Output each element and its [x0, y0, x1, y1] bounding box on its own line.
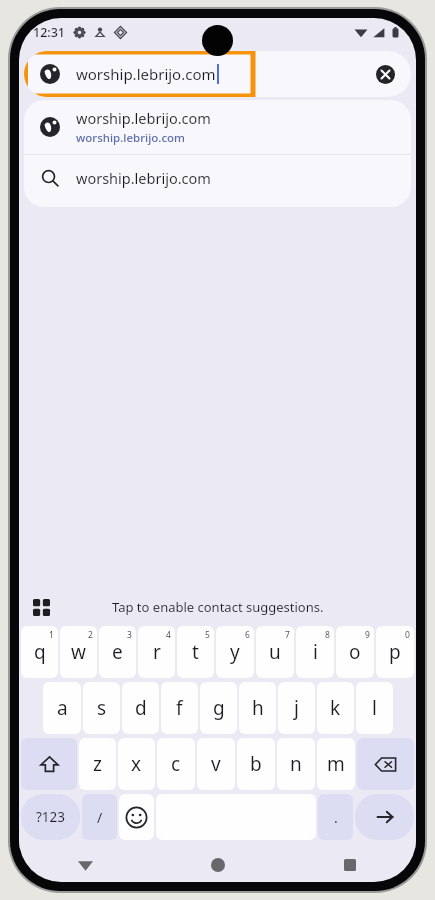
staticText: .	[334, 808, 338, 827]
button[interactable]: x	[118, 738, 155, 790]
button[interactable]: ?123	[21, 794, 80, 840]
staticText: 12:31	[33, 24, 66, 41]
button[interactable]: i	[296, 626, 334, 678]
staticText: w	[71, 639, 86, 665]
staticText: k	[330, 695, 341, 721]
button[interactable]: Clear text	[365, 54, 405, 94]
staticText: Tap to enable contact suggestions.	[112, 598, 324, 616]
staticText: 5	[205, 629, 210, 641]
button[interactable]: Home	[152, 848, 284, 882]
button[interactable]: l	[356, 682, 393, 734]
button[interactable]: w	[60, 626, 97, 678]
staticText: 0	[405, 629, 410, 641]
button[interactable]: /	[82, 794, 117, 840]
staticText: f	[176, 695, 183, 721]
button[interactable]: Recent apps	[284, 848, 416, 882]
staticText: t	[192, 639, 199, 665]
staticText: 6	[245, 629, 250, 641]
staticText: worship.lebrijo.com	[76, 130, 185, 146]
staticText: c	[171, 751, 181, 777]
button[interactable]: z	[79, 738, 116, 790]
staticText: e	[112, 639, 123, 665]
button[interactable]: worship.lebrijo.com	[24, 100, 411, 154]
button[interactable]: j	[278, 682, 315, 734]
staticText: 7	[285, 629, 290, 641]
button[interactable]: m	[317, 738, 355, 790]
button[interactable]: h	[239, 682, 276, 734]
staticText: r	[153, 639, 161, 665]
button[interactable]: r	[138, 626, 175, 678]
button[interactable]: g	[200, 682, 237, 734]
staticText: d	[135, 695, 147, 721]
staticText: 2	[88, 629, 93, 641]
staticText: a	[57, 695, 68, 721]
button[interactable]: k	[317, 682, 354, 734]
button[interactable]: s	[83, 682, 120, 734]
staticText: 3	[127, 629, 132, 641]
staticText: 1	[49, 629, 54, 641]
button[interactable]: d	[122, 682, 159, 734]
staticText: j	[294, 695, 299, 721]
button[interactable]: v	[197, 738, 235, 790]
staticText: v	[211, 751, 221, 777]
button[interactable]: e	[99, 626, 136, 678]
button[interactable]: t	[177, 626, 214, 678]
staticText: 8	[325, 629, 330, 641]
staticText: worship.lebrijo.com	[76, 168, 211, 188]
staticText: x	[131, 751, 142, 777]
staticText: q	[34, 639, 46, 665]
button[interactable]: worship.lebrijo.com	[24, 51, 411, 97]
button[interactable]: Go	[355, 794, 414, 840]
button[interactable]: q	[21, 626, 58, 678]
staticText: s	[97, 695, 107, 721]
button[interactable]: p	[376, 626, 414, 678]
button[interactable]: y	[216, 626, 254, 678]
staticText: m	[327, 751, 345, 777]
staticText: ?123	[36, 808, 66, 826]
button[interactable]: Back	[19, 848, 152, 882]
button[interactable]: a	[43, 682, 81, 734]
button[interactable]: Contact suggestions	[19, 588, 416, 626]
staticText: 4	[166, 629, 171, 641]
staticText: g	[213, 695, 225, 721]
staticText: 9	[365, 629, 370, 641]
button[interactable]: worship.lebrijo.com	[24, 155, 411, 201]
button[interactable]: o	[336, 626, 374, 678]
staticText: y	[230, 639, 240, 665]
staticText: i	[313, 639, 318, 665]
other: Contact suggestions	[29, 595, 53, 619]
staticText: z	[93, 751, 102, 777]
staticText: n	[290, 751, 302, 777]
staticText: worship.lebrijo.com	[76, 108, 211, 128]
staticText: b	[250, 751, 262, 777]
button[interactable]: .	[318, 794, 353, 840]
button[interactable]: Shift	[21, 738, 77, 790]
button[interactable]: n	[277, 738, 315, 790]
staticText: o	[349, 639, 361, 665]
button[interactable]: Emoji	[119, 794, 154, 840]
button[interactable]: u	[256, 626, 294, 678]
staticText: h	[252, 695, 264, 721]
staticText: u	[269, 639, 281, 665]
staticText: worship.lebrijo.com	[76, 64, 216, 84]
staticText: /	[97, 808, 103, 827]
staticText: l	[372, 695, 377, 721]
button[interactable]: b	[237, 738, 275, 790]
button[interactable]: f	[161, 682, 198, 734]
staticText: p	[389, 639, 401, 665]
button[interactable]: Backspace	[357, 738, 414, 790]
button[interactable]: c	[157, 738, 195, 790]
